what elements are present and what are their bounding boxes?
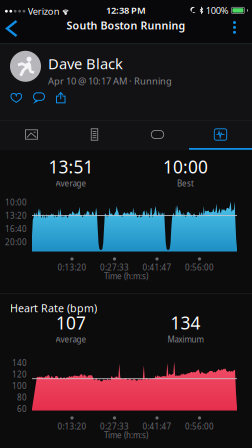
staticText: 0:13:20: [57, 421, 86, 432]
staticText: Time (h:m:s): [104, 430, 148, 440]
staticText: 60: [17, 403, 27, 414]
button[interactable]: Splits: [63, 121, 126, 148]
staticText: Average: [55, 178, 86, 189]
button[interactable]: Laps: [126, 121, 189, 148]
staticText: 10:00: [163, 155, 208, 178]
button[interactable]: Comment: [27, 88, 50, 107]
staticText: 140: [12, 357, 27, 368]
staticText: Time (h:m:s): [104, 271, 148, 281]
staticText: 0:56:00: [185, 262, 214, 273]
staticText: 16:40: [5, 224, 27, 234]
staticText: 0:27:33: [100, 262, 129, 273]
button[interactable]: Share: [50, 88, 71, 107]
staticText: South Boston Running: [66, 18, 185, 32]
button[interactable]: Map: [0, 121, 63, 148]
staticText: 0:27:33: [100, 421, 129, 432]
staticText: 0:41:47: [142, 262, 171, 273]
staticText: Best: [177, 178, 194, 189]
staticText: 107: [56, 311, 86, 334]
staticText: 0:56:00: [185, 421, 214, 432]
staticText: Apr 10 @ 10:17 AM · Running: [48, 75, 172, 87]
staticText: Dave Black: [48, 54, 123, 73]
staticText: 10:00: [5, 197, 27, 208]
staticText: 0:41:47: [142, 421, 171, 432]
staticText: Average: [55, 334, 86, 345]
button[interactable]: Charts: [189, 121, 252, 148]
staticText: 20:00: [5, 237, 27, 247]
staticText: Maximum: [167, 334, 203, 345]
staticText: Heart Rate (bpm): [10, 301, 97, 315]
staticText: 134: [170, 311, 200, 334]
staticText: 13:51: [48, 155, 93, 178]
staticText: 12:38 PM: [106, 4, 146, 16]
button[interactable]: More options: [221, 16, 252, 41]
staticText: 80: [17, 392, 27, 403]
button[interactable]: Like: [5, 88, 27, 107]
staticText: 120: [12, 369, 27, 380]
staticText: Verizon: [28, 5, 60, 17]
staticText: 13:20: [5, 210, 27, 221]
staticText: 100%: [206, 4, 229, 17]
button[interactable]: Back: [0, 16, 28, 43]
staticText: 0:13:20: [57, 262, 86, 273]
staticText: 100: [12, 380, 27, 391]
